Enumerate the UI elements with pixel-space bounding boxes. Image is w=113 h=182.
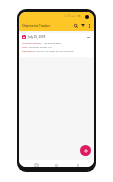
staticText: Shipments Tracker	[22, 24, 51, 28]
staticText: 12:30	[64, 14, 71, 18]
button[interactable]: Back	[74, 162, 81, 167]
staticText: Tracking number:	[22, 41, 43, 44]
staticText: Gift for my sister for her birthday	[36, 49, 74, 52]
button[interactable]: Search	[72, 21, 79, 30]
button[interactable]: More options	[86, 21, 92, 30]
staticText: 1Z2345W67890	[43, 41, 61, 44]
staticText: Title:	[22, 45, 28, 48]
staticText: Description:	[22, 49, 36, 52]
staticText: Samsung Galaxy S10	[28, 45, 52, 48]
button[interactable]: Recents	[33, 162, 40, 167]
button[interactable]: Add shipment	[80, 145, 91, 156]
button[interactable]: Item options	[86, 35, 91, 39]
button[interactable]: Filter	[79, 21, 86, 30]
button[interactable]: Home	[53, 162, 60, 167]
staticText: July 25, 2018	[28, 35, 46, 39]
button[interactable]: July 25, 2018	[20, 33, 93, 57]
